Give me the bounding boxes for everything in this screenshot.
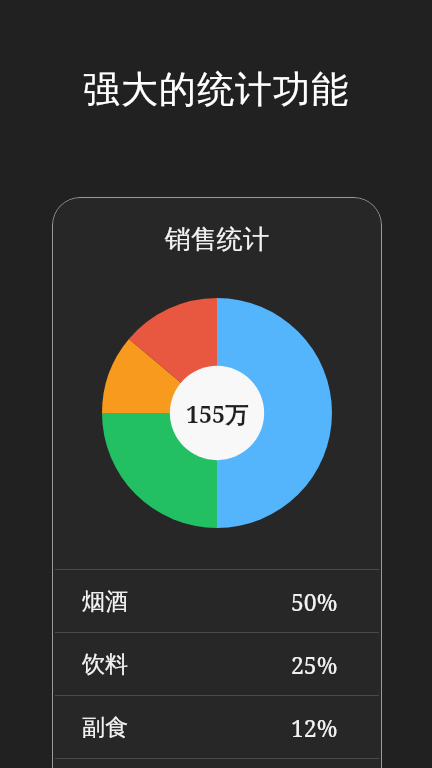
staticText: 25% <box>291 649 338 680</box>
staticText: 155万 <box>186 398 248 429</box>
staticText: 销售统计 <box>52 223 382 256</box>
staticText: 副食 <box>82 713 128 742</box>
button[interactable]: 饮料 <box>52 633 382 695</box>
button[interactable]: 副食 <box>52 696 382 758</box>
staticText: 饮料 <box>82 650 128 679</box>
button[interactable]: 销售统计 <box>52 197 382 768</box>
staticText: 烟酒 <box>82 587 128 616</box>
staticText: 50% <box>291 586 338 617</box>
staticText: 12% <box>291 712 338 743</box>
staticText: 强大的统计功能 <box>0 66 432 113</box>
button[interactable]: Sales distribution donut chart <box>102 298 332 528</box>
button[interactable]: 烟酒 <box>52 570 382 632</box>
